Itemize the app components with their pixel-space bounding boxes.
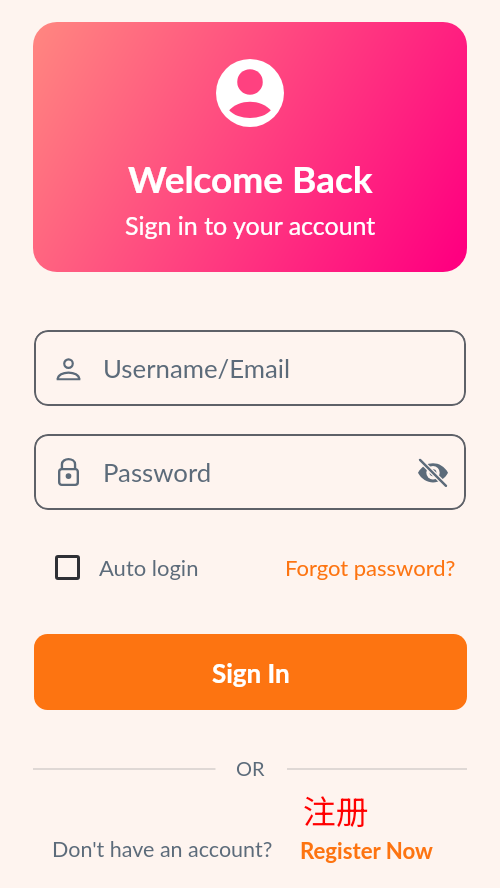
staticText: Forgot password? [285,554,456,580]
button[interactable]: Password [34,434,466,510]
staticText: Welcome Back [128,156,373,200]
staticText: Don't have an account? [52,836,273,862]
button[interactable]: Don't have an account? [52,836,273,862]
button[interactable]: Show password [412,451,454,493]
staticText: Sign in to your account [125,210,376,240]
staticText: OR [236,756,265,780]
button[interactable]: Auto login [55,554,199,580]
staticText: Sign In [212,657,290,688]
staticText: Password [103,457,212,488]
button[interactable]: Sign In [34,634,467,710]
staticText: 注册 [303,786,369,834]
staticText: Register Now [300,837,433,864]
button[interactable]: Username/Email [34,330,466,406]
button[interactable]: 注册 [301,786,437,866]
staticText: Auto login [99,554,199,580]
button[interactable]: Forgot password? [285,552,456,582]
staticText: Username/Email [103,353,291,384]
